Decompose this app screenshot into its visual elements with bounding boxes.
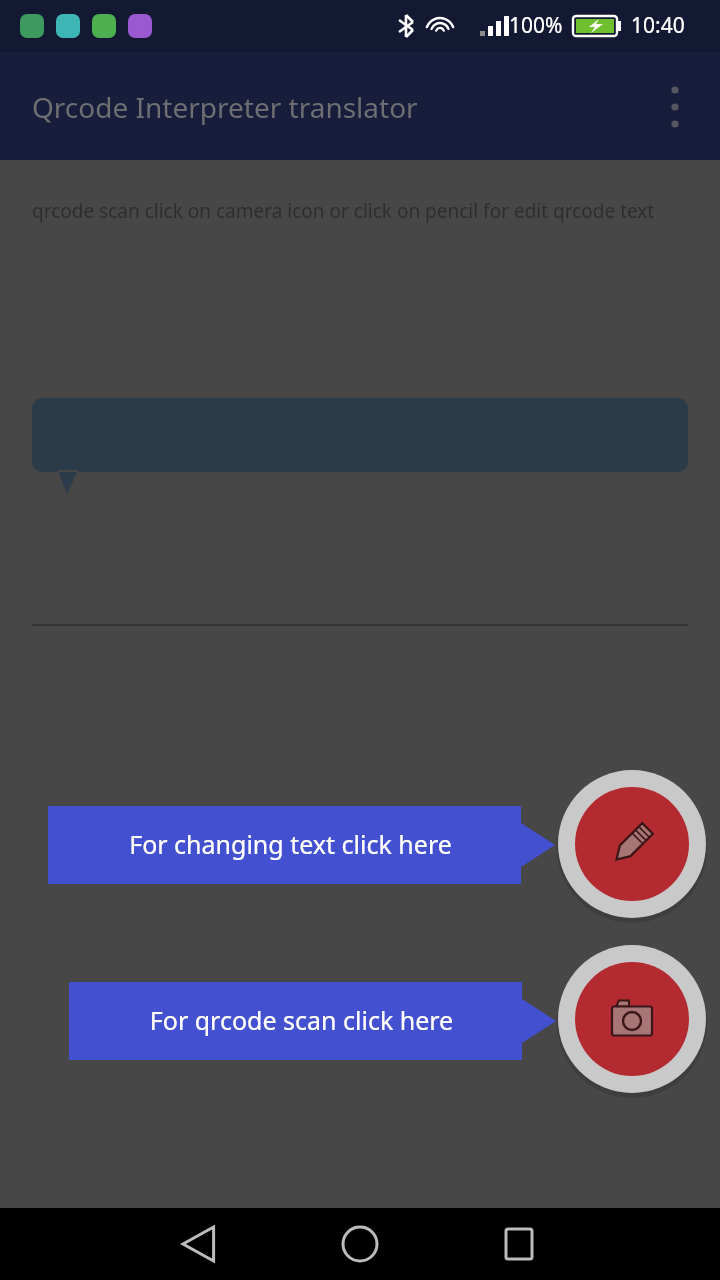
staticText: Qrcode Interpreter translator [32,88,418,126]
staticText: 100% [509,11,563,40]
button[interactable]: For changing text click here [48,806,555,884]
button[interactable]: Decoded qrcode text [32,398,688,494]
staticText: qrcode scan click on camera icon or clic… [32,198,672,270]
button[interactable]: Edit text [556,768,708,920]
button[interactable]: For qrcode scan click here [69,982,556,1060]
button[interactable]: More options [646,78,704,136]
button[interactable]: Scan qrcode [556,943,708,1095]
button[interactable]: Recent apps [479,1208,559,1280]
button[interactable]: Back [160,1208,240,1280]
staticText: For changing text click here [64,827,517,867]
staticText: For qrcode scan click here [85,1003,518,1043]
staticText: 10:40 [631,11,685,40]
button[interactable]: Home [320,1208,400,1280]
